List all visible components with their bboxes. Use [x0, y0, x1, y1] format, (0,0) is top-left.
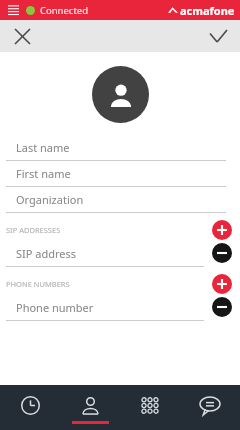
- button[interactable]: Add SIP ADDRESSES: [212, 220, 232, 240]
- button[interactable]: Keypad: [120, 385, 180, 430]
- staticText: Last name: [16, 140, 70, 155]
- button[interactable]: Cancel: [8, 22, 36, 50]
- staticText: SIP ADDRESSES: [6, 225, 61, 235]
- staticText: Phone number: [16, 300, 94, 315]
- button[interactable]: Add PHONE NUMBERS: [212, 274, 232, 294]
- button[interactable]: Phone number: [0, 295, 240, 321]
- button[interactable]: First name: [0, 161, 240, 187]
- button[interactable]: Recents: [0, 385, 60, 430]
- button[interactable]: Remove Phone number: [212, 297, 232, 317]
- staticText: First name: [16, 166, 71, 181]
- button[interactable]: SIP address: [0, 241, 240, 267]
- button[interactable]: Contacts: [60, 385, 120, 430]
- button[interactable]: Remove SIP address: [212, 243, 232, 263]
- staticText: acmafone: [180, 3, 235, 18]
- button[interactable]: Contact photo: [92, 66, 149, 123]
- staticText: PHONE NUMBERS: [6, 279, 70, 289]
- staticText: Connected: [40, 4, 89, 17]
- button[interactable]: Organization: [0, 187, 240, 213]
- button[interactable]: Save: [204, 22, 232, 50]
- button[interactable]: Menu: [4, 1, 22, 19]
- button[interactable]: Messages: [180, 385, 240, 430]
- staticText: Organization: [16, 192, 84, 207]
- button[interactable]: Last name: [0, 135, 240, 161]
- staticText: SIP address: [16, 246, 77, 261]
